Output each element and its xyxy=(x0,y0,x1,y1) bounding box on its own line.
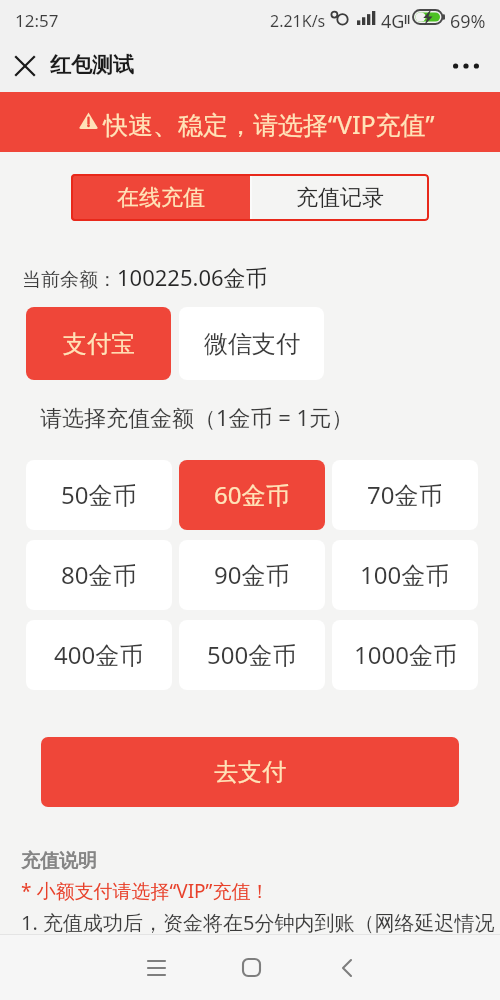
staticText: 12:57 xyxy=(15,9,59,32)
staticText: 400金币 xyxy=(54,638,144,671)
button[interactable]: 90金币 xyxy=(179,540,325,610)
staticText: 60金币 xyxy=(214,478,290,511)
button[interactable]: 100金币 xyxy=(332,540,478,610)
staticText: 70金币 xyxy=(367,478,443,511)
staticText: 500金币 xyxy=(207,638,297,671)
staticText: 微信支付 xyxy=(204,329,300,359)
button[interactable]: 在线充值 xyxy=(71,174,250,221)
button[interactable]: Close xyxy=(2,40,47,92)
staticText: 100金币 xyxy=(360,558,450,591)
button[interactable]: 70金币 xyxy=(332,460,478,530)
staticText: 1000金币 xyxy=(354,638,457,671)
staticText: 请选择充值金额（1金币 = 1元） xyxy=(40,402,354,432)
staticText: 支付宝 xyxy=(63,329,135,359)
staticText: 充值说明 xyxy=(21,849,97,873)
staticText: 红包测试 xyxy=(50,52,134,78)
staticText: 4G xyxy=(381,9,405,34)
staticText: * 小额支付请选择“VIP”充值！ xyxy=(21,878,270,904)
staticText: 69% xyxy=(450,9,486,34)
staticText: 去支付 xyxy=(214,757,286,787)
staticText: 80金币 xyxy=(61,558,137,591)
staticText: 2.21K/s xyxy=(270,10,326,32)
staticText: 90金币 xyxy=(214,558,290,591)
button[interactable]: 支付宝 xyxy=(26,307,171,380)
button[interactable]: Back xyxy=(298,935,395,1000)
staticText: 1. 充值成功后，资金将在5分钟内到账（网络延迟情况 xyxy=(21,909,495,936)
button[interactable]: 500金币 xyxy=(179,620,325,690)
button[interactable]: 充值记录 xyxy=(250,174,429,221)
staticText: 50金币 xyxy=(61,478,137,511)
button[interactable]: 1000金币 xyxy=(332,620,478,690)
staticText: 当前余额： xyxy=(22,268,117,292)
button[interactable]: Recent apps xyxy=(108,935,205,1000)
staticText: 快速、稳定，请选择“VIP充值” xyxy=(103,107,435,141)
staticText: 在线充值 xyxy=(117,184,205,212)
button[interactable]: 去支付 xyxy=(41,737,459,807)
button[interactable]: Home xyxy=(203,935,300,1000)
button[interactable]: 微信支付 xyxy=(179,307,324,380)
staticText: 100225.06金币 xyxy=(117,262,268,292)
button[interactable]: 400金币 xyxy=(26,620,172,690)
button[interactable]: 60金币 xyxy=(179,460,325,530)
button[interactable]: 50金币 xyxy=(26,460,172,530)
button[interactable]: More options xyxy=(440,40,492,92)
button[interactable]: 80金币 xyxy=(26,540,172,610)
staticText: 充值记录 xyxy=(296,184,384,212)
